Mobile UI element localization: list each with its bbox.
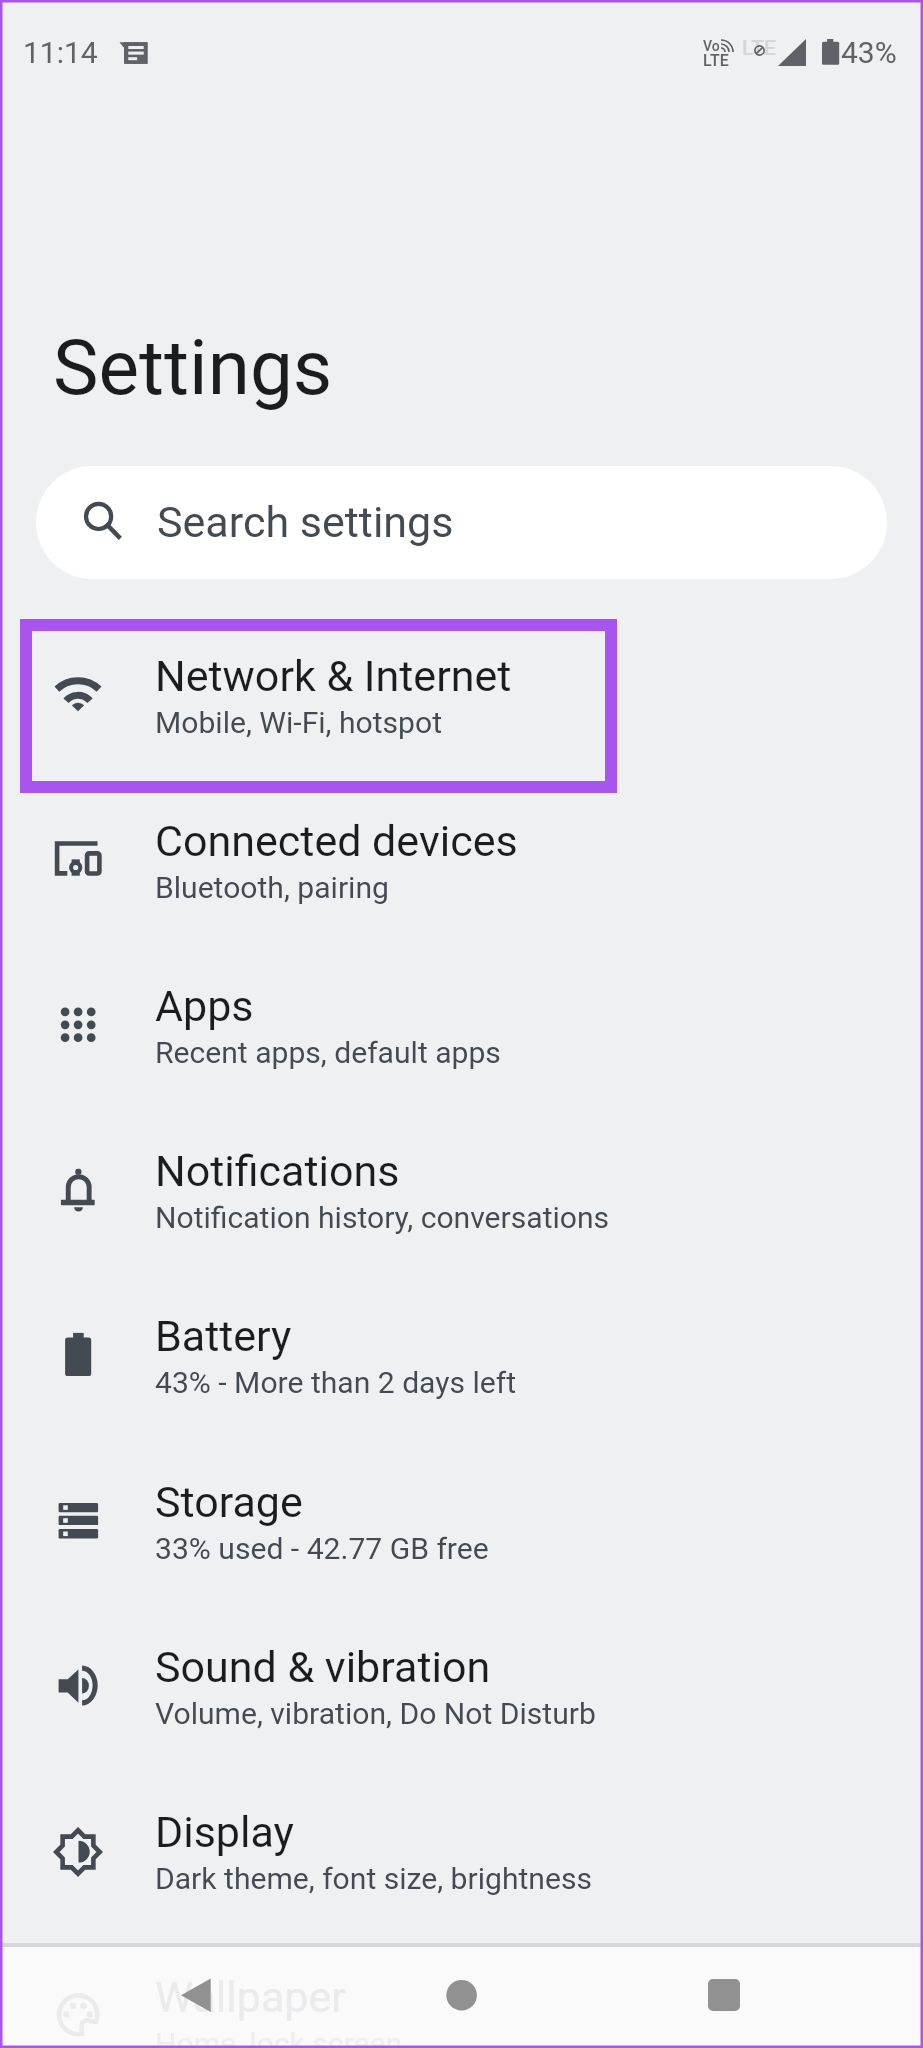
- button[interactable]: Connected devices: [0, 778, 923, 943]
- staticText: Sound & vibration: [155, 1642, 491, 1692]
- staticText: Search settings: [157, 497, 454, 547]
- button[interactable]: Search settings: [36, 466, 887, 579]
- button[interactable]: Back: [151, 1960, 241, 2030]
- button[interactable]: Display: [0, 1769, 923, 1934]
- staticText: 43%: [841, 35, 897, 70]
- staticText: Network & Internet: [155, 651, 512, 701]
- button[interactable]: Sound & vibration: [0, 1604, 923, 1769]
- staticText: Notifications: [155, 1146, 400, 1196]
- button[interactable]: Notifications: [0, 1108, 923, 1273]
- staticText: LTE: [742, 36, 776, 61]
- button[interactable]: Battery: [0, 1273, 923, 1438]
- staticText: LTE: [703, 51, 729, 70]
- staticText: 33% used - 42.77 GB free: [155, 1531, 489, 1566]
- staticText: Settings: [53, 323, 333, 413]
- button[interactable]: Recent apps: [679, 1960, 769, 2030]
- staticText: 11:14: [23, 35, 98, 70]
- button[interactable]: Storage: [0, 1439, 923, 1604]
- button[interactable]: Apps: [0, 943, 923, 1108]
- staticText: Notification history, conversations: [155, 1200, 610, 1235]
- staticText: Recent apps, default apps: [155, 1035, 501, 1070]
- staticText: Dark theme, font size, brightness: [155, 1861, 592, 1896]
- staticText: Bluetooth, pairing: [155, 870, 389, 905]
- staticText: Display: [155, 1807, 294, 1857]
- staticText: Wallpaper: [155, 1972, 346, 2022]
- staticText: Vo: [703, 38, 720, 54]
- staticText: Apps: [155, 981, 254, 1031]
- staticText: Connected devices: [155, 816, 518, 866]
- button[interactable]: Home: [417, 1960, 507, 2030]
- staticText: Battery: [155, 1311, 292, 1361]
- staticText: Volume, vibration, Do Not Disturb: [155, 1696, 596, 1731]
- staticText: 43% - More than 2 days left: [155, 1365, 517, 1400]
- staticText: Storage: [155, 1477, 303, 1527]
- button[interactable]: Network & Internet: [0, 613, 923, 778]
- staticText: Home, lock screen: [155, 2026, 403, 2048]
- staticText: Mobile, Wi-Fi, hotspot: [155, 705, 443, 740]
